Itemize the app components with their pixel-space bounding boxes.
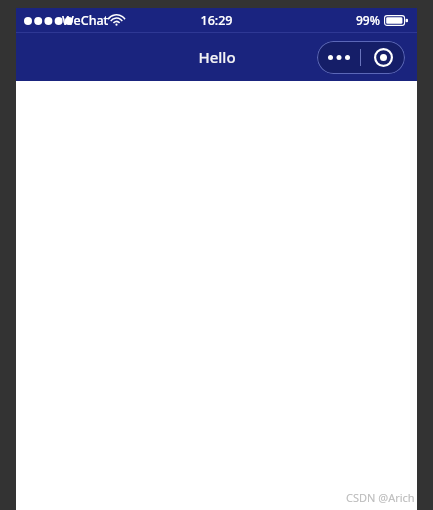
staticText: WeChat <box>62 12 109 29</box>
button[interactable]: Close <box>361 41 405 74</box>
other: Mini program menu <box>317 41 405 74</box>
staticText: 16:29 <box>200 12 233 29</box>
staticText: Hello <box>198 47 236 67</box>
staticText: 99% <box>356 12 380 28</box>
button[interactable]: More <box>317 41 360 74</box>
staticText: CSDN @Arich <box>346 490 415 505</box>
